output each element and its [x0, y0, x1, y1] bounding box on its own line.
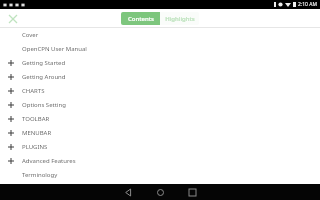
button[interactable]: Highlights: [160, 12, 199, 25]
button[interactable]: Getting Around: [0, 70, 320, 84]
staticText: OpenCPN User Manual: [22, 45, 87, 53]
staticText: Getting Started: [22, 59, 66, 67]
button[interactable]: TOOLBAR: [0, 112, 320, 126]
staticText: CHARTS: [22, 87, 45, 95]
staticText: Contents: [128, 15, 154, 23]
button[interactable]: MENUBAR: [0, 126, 320, 140]
staticText: PLUGINS: [22, 143, 48, 151]
staticText: TOOLBAR: [22, 115, 50, 123]
staticText: Getting Around: [22, 73, 66, 81]
button[interactable]: OpenCPN User Manual: [0, 42, 320, 56]
staticText: Terminology: [22, 171, 58, 179]
button[interactable]: Back: [115, 184, 141, 200]
button[interactable]: CHARTS: [0, 84, 320, 98]
staticText: MENUBAR: [22, 129, 52, 137]
button[interactable]: Cover: [0, 28, 320, 42]
button[interactable]: Close: [4, 10, 22, 28]
staticText: Cover: [22, 31, 39, 39]
button[interactable]: Terminology: [0, 168, 320, 182]
button[interactable]: Home: [147, 184, 173, 200]
button[interactable]: Options Setting: [0, 98, 320, 112]
button[interactable]: Contents: [121, 12, 160, 25]
staticText: Advanced Features: [22, 157, 76, 165]
staticText: 2:10 AM: [298, 1, 317, 8]
button[interactable]: Getting Started: [0, 56, 320, 70]
staticText: Options Setting: [22, 101, 66, 109]
button[interactable]: PLUGINS: [0, 140, 320, 154]
staticText: Highlights: [165, 15, 195, 23]
button[interactable]: Recents: [179, 184, 205, 200]
button[interactable]: Advanced Features: [0, 154, 320, 168]
